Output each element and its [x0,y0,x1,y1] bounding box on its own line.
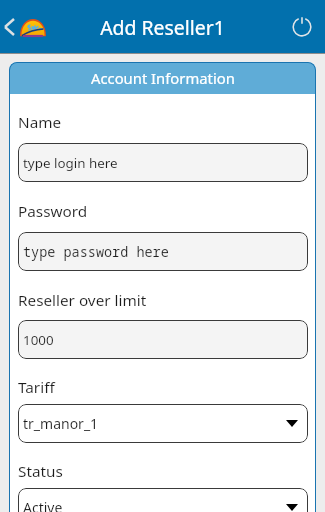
staticText: Reseller over limit [18,290,147,311]
staticText: Add Reseller1 [100,14,225,40]
button[interactable]: Active [18,488,308,512]
staticText: Tariff [18,377,55,398]
button[interactable]: type login here [18,143,308,182]
button[interactable]: Home logo [19,9,47,45]
button[interactable]: type password here [18,232,308,271]
staticText: Active [23,498,63,512]
staticText: tr_manor_1 [23,414,99,433]
staticText: type login here [23,154,118,172]
button[interactable]: tr_manor_1 [18,404,308,443]
button[interactable]: Back [0,9,19,45]
staticText: Account Information [91,68,235,88]
button[interactable]: Logout [286,11,318,43]
staticText: Status [18,461,63,482]
staticText: Password [18,201,88,222]
staticText: type password here [23,243,169,261]
staticText: 1000 [23,331,54,349]
button[interactable]: 1000 [18,320,308,359]
staticText: Name [18,112,62,133]
